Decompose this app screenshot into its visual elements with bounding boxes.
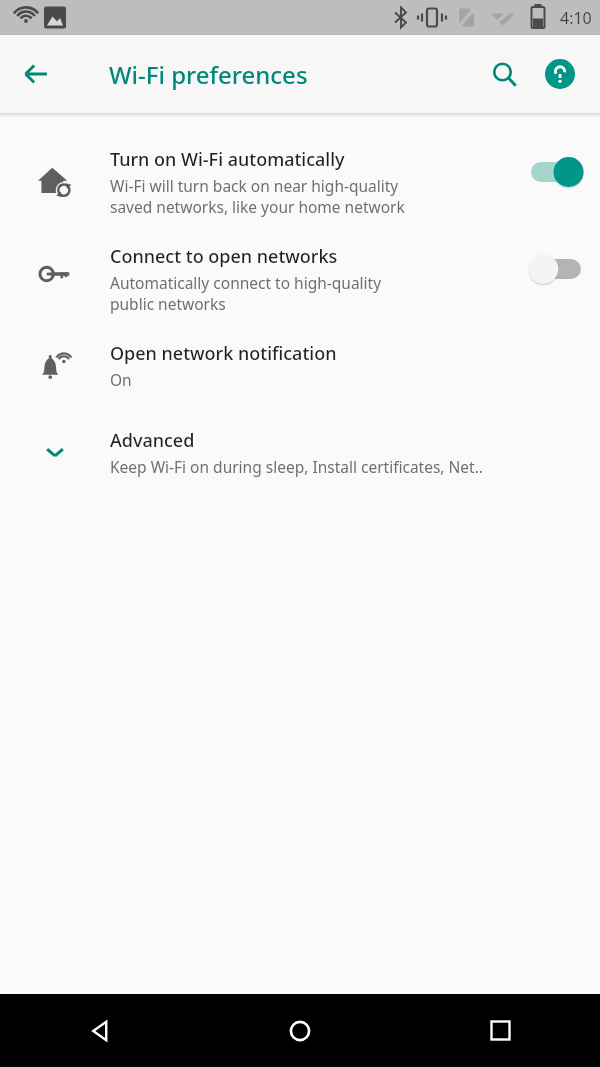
button[interactable]: Connect to open networks	[0, 232, 600, 329]
button[interactable]: Turn on Wi-Fi automatically	[0, 135, 600, 232]
staticText: 4:10	[560, 7, 592, 29]
button[interactable]: Off	[531, 254, 589, 284]
staticText: Wi-Fi preferences	[109, 58, 308, 91]
button[interactable]: Navigate up	[8, 46, 64, 102]
staticText: Wi-Fi will turn back on near high-qualit…	[110, 175, 405, 218]
button[interactable]: Search	[476, 46, 532, 102]
button[interactable]: Advanced	[0, 416, 600, 491]
button[interactable]: Recent apps	[400, 994, 600, 1067]
button[interactable]: Open network notification	[0, 329, 600, 404]
staticText: Open network notification	[110, 341, 337, 366]
staticText: Turn on Wi-Fi automatically	[110, 147, 345, 172]
button[interactable]: Help	[532, 46, 588, 102]
staticText: Keep Wi-Fi on during sleep, Install cert…	[110, 456, 483, 477]
staticText: On	[110, 369, 132, 390]
button[interactable]: On	[531, 157, 589, 187]
staticText: Connect to open networks	[110, 244, 338, 269]
button[interactable]: Home	[200, 994, 400, 1067]
staticText: Automatically connect to high-quality pu…	[110, 272, 382, 315]
staticText: Advanced	[110, 428, 195, 453]
button[interactable]: Back	[0, 994, 200, 1067]
